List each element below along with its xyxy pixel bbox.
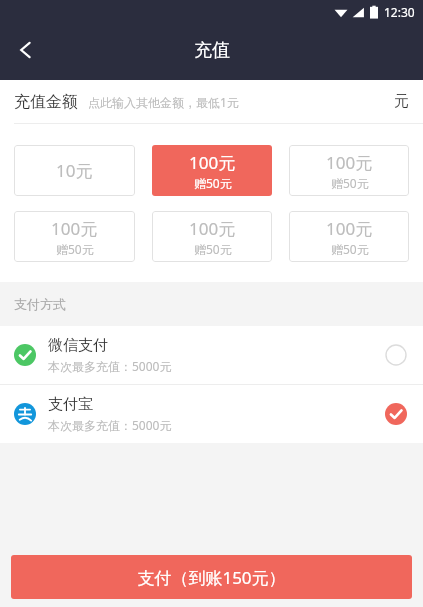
staticText: 充值 [194,39,230,62]
staticText: 元 [394,92,409,111]
staticText: 本次最多充值：5000元 [48,417,172,433]
button[interactable]: 支付宝 [0,385,423,443]
staticText: 赠50元 [56,241,94,257]
staticText: 赠50元 [194,175,232,191]
staticText: 支付方式 [14,296,66,312]
staticText: 微信支付 [48,336,108,355]
staticText: 10元 [56,159,93,182]
button[interactable]: 100元 [152,145,272,196]
staticText: 100元 [189,217,236,240]
staticText: 100元 [189,151,236,174]
button[interactable]: 10元 [14,145,135,196]
button[interactable]: 100元 [289,211,409,262]
button[interactable]: Back [0,24,52,76]
staticText: 充值金额 [14,92,78,112]
staticText: 赠50元 [194,241,232,257]
staticText: 100元 [326,151,373,174]
staticText: 100元 [326,217,373,240]
staticText: 支付（到账150元） [137,566,286,589]
button[interactable]: 微信支付 [0,326,423,384]
button[interactable]: 100元 [152,211,272,262]
button[interactable]: 100元 [14,211,135,262]
button[interactable]: 支付（到账150元） [11,555,412,599]
staticText: 12:30 [384,4,415,20]
button[interactable]: 100元 [289,145,409,196]
staticText: 赠50元 [331,241,369,257]
staticText: 100元 [51,217,98,240]
staticText: 点此输入其他金额，最低1元 [88,94,239,110]
staticText: 支付宝 [48,395,93,414]
button[interactable]: 充值金额 [0,80,423,123]
staticText: 赠50元 [331,175,369,191]
staticText: 本次最多充值：5000元 [48,358,172,374]
